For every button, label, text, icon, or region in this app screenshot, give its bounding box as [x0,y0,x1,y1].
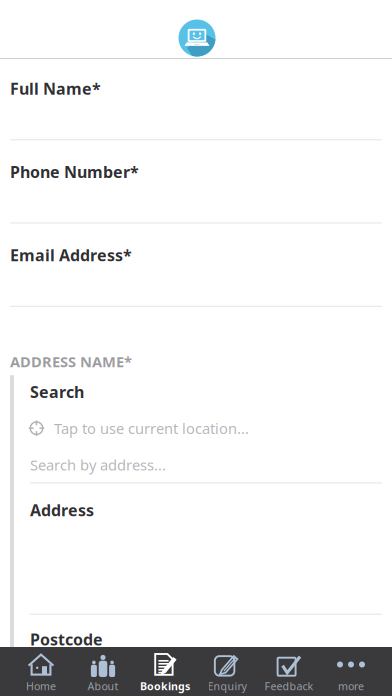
staticText: ADDRESS NAME* [10,352,132,371]
button[interactable]: Enquiry [196,647,258,696]
button[interactable]: Bookings [134,647,196,696]
staticText: Postcode [30,629,103,650]
button[interactable]: more [320,647,382,696]
staticText: Bookings [140,679,190,693]
staticText: Full Name* [10,78,101,99]
staticText: Email Address* [10,244,132,266]
staticText: more [338,679,364,693]
button[interactable]: Postcode [14,629,392,650]
button[interactable]: Home [10,647,72,696]
button[interactable]: Full Name* [0,59,392,140]
button[interactable]: Feedback [258,647,320,696]
staticText: Phone Number* [10,161,139,182]
staticText: Home [26,679,56,693]
button[interactable]: Tap to use current location... [14,418,392,438]
staticText: About [87,679,118,693]
button[interactable]: Phone Number* [0,140,392,223]
button[interactable]: Email Address* [0,223,392,307]
button[interactable]: About [72,647,134,696]
staticText: Address [30,499,94,521]
button[interactable]: Search by address... [14,455,392,483]
staticText: Search [30,381,84,402]
staticText: Enquiry [207,679,246,693]
staticText: Search by address... [30,455,166,474]
button[interactable]: Address [14,499,392,615]
staticText: Feedback [264,679,313,693]
staticText: Tap to use current location... [54,418,249,438]
